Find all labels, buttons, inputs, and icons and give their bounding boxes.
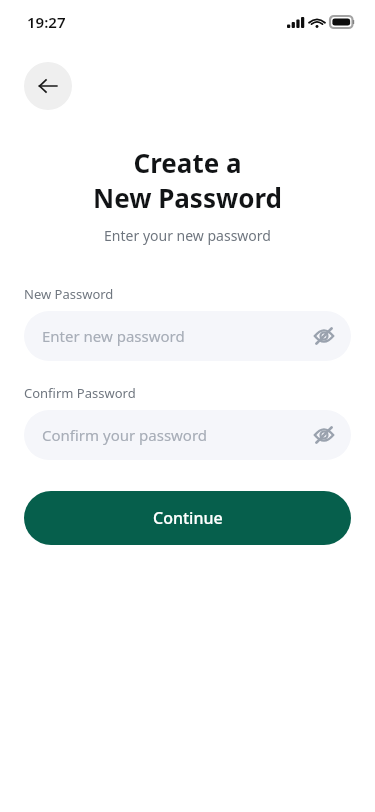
button[interactable]: Back bbox=[24, 62, 72, 110]
button[interactable]: Enter new password bbox=[24, 311, 351, 361]
staticText: Create a bbox=[0, 145, 375, 180]
staticText: Confirm your password bbox=[42, 425, 208, 445]
button[interactable]: Confirm your password bbox=[24, 410, 351, 460]
button[interactable]: Toggle password visibility bbox=[311, 422, 337, 448]
button[interactable]: Continue bbox=[24, 491, 351, 545]
staticText: Confirm Password bbox=[24, 384, 136, 402]
staticText: 19:27 bbox=[27, 12, 66, 32]
staticText: Enter new password bbox=[42, 326, 185, 346]
button[interactable]: Toggle password visibility bbox=[311, 323, 337, 349]
staticText: New Password bbox=[24, 285, 114, 303]
staticText: New Password bbox=[0, 180, 375, 215]
staticText: Continue bbox=[153, 507, 223, 529]
staticText: Enter your new password bbox=[0, 226, 375, 245]
